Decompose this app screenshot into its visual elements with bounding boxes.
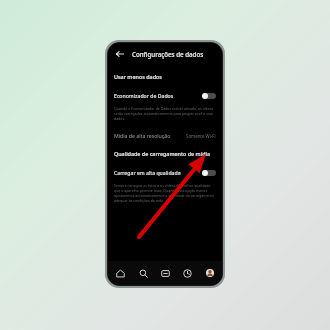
button[interactable]: Voltar <box>113 47 127 61</box>
staticText: ajustaremos automaticamente a qualidade … <box>114 193 216 198</box>
staticText: Quando o Economizador de Dados estiver a… <box>114 106 216 111</box>
button[interactable]: Biblioteca <box>155 262 175 284</box>
staticText: Sempre carregue os fotos e os vídeos de … <box>114 183 216 188</box>
staticText: Configurações de dados móveis <box>132 50 216 58</box>
button[interactable]: Início <box>110 262 130 284</box>
staticText: Mídia de alta resolução <box>114 132 171 139</box>
button[interactable]: Mídia de alta resolução <box>114 130 216 141</box>
button[interactable]: Atividade <box>177 262 197 284</box>
staticText: Usar menos dados <box>114 73 162 80</box>
button[interactable]: Pesquisar <box>133 262 153 284</box>
staticText: Economizador de Dados <box>114 92 174 99</box>
staticText: dados. <box>114 116 126 121</box>
staticText: Carregar em alta qualidade <box>114 169 181 176</box>
staticText: adequar às condições da rede. <box>114 198 165 203</box>
button[interactable]: Economizador de Dados <box>114 89 216 101</box>
staticText: serão carregados automaticamente para po… <box>114 111 216 116</box>
staticText: que o aparelho permite mais. Quando esta… <box>114 188 216 193</box>
staticText: Somente Wi-Fi <box>186 133 216 139</box>
staticText: Qualidade de carregamento de mídia <box>114 150 211 157</box>
button[interactable]: Carregar em alta qualidade <box>114 166 216 178</box>
button[interactable]: Perfil <box>200 262 220 284</box>
